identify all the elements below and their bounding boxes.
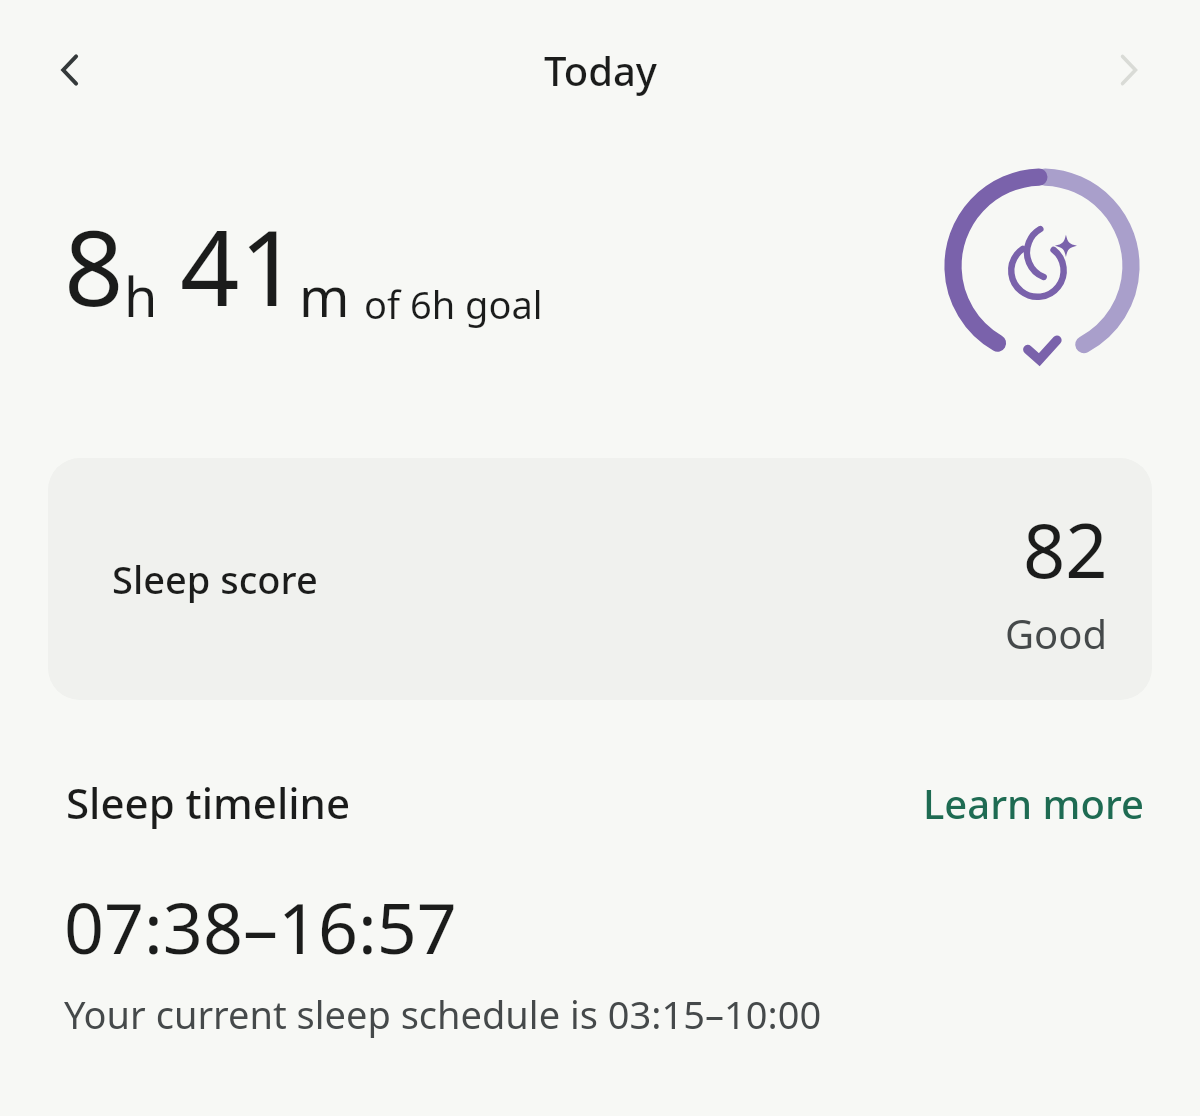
staticText: 8 <box>64 195 124 337</box>
staticText: 82 <box>1023 499 1108 600</box>
staticText: h <box>124 259 158 333</box>
staticText: Your current sleep schedule is 03:15–10:… <box>64 988 822 1040</box>
staticText: 41 <box>180 195 299 337</box>
button[interactable]: Previous day <box>42 42 98 98</box>
button[interactable]: Sleep goal progress <box>942 166 1142 366</box>
staticText: 07:38–16:57 <box>64 879 457 974</box>
button[interactable]: Learn more <box>923 776 1144 830</box>
staticText: Sleep score <box>112 553 318 605</box>
staticText: of 6h goal <box>364 278 543 330</box>
button[interactable]: Next day <box>1100 42 1156 98</box>
staticText: Good <box>1005 606 1108 660</box>
button[interactable]: Sleep score <box>48 458 1152 700</box>
staticText: Today <box>544 43 657 97</box>
staticText: Learn more <box>923 776 1144 830</box>
staticText: m <box>299 259 350 333</box>
staticText: Sleep timeline <box>66 774 351 831</box>
